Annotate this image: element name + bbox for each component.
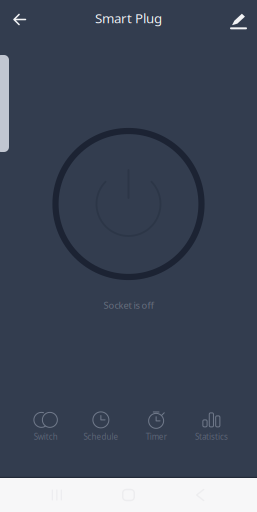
button[interactable]: Back	[0, 0, 35, 36]
staticText: Socket is off	[103, 299, 153, 311]
button[interactable]: Edit	[220, 0, 257, 36]
staticText: Statistics	[195, 431, 228, 442]
button[interactable]: Switch	[18, 411, 73, 442]
button[interactable]: Timer	[128, 411, 184, 442]
staticText: Schedule	[83, 431, 118, 442]
staticText: Smart Plug	[95, 9, 162, 27]
button[interactable]: Schedule	[73, 411, 128, 442]
staticText: Switch	[34, 431, 58, 442]
button[interactable]: Power	[53, 129, 203, 279]
button[interactable]: Statistics	[184, 411, 239, 442]
staticText: Timer	[146, 431, 167, 442]
